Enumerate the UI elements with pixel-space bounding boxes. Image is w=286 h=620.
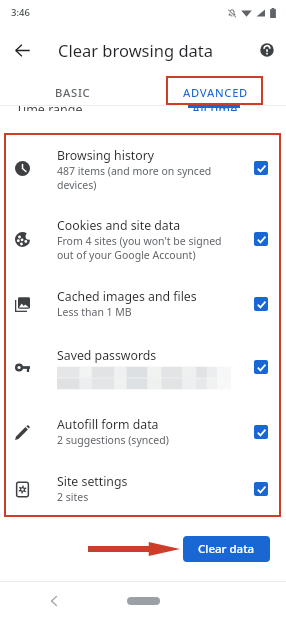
button[interactable]: Clear data (183, 536, 270, 562)
staticText: Cookies and site data (57, 217, 181, 234)
staticText: Site settings (57, 473, 128, 490)
button[interactable]: Checkbox, checked (254, 425, 268, 439)
button[interactable]: Checkbox, checked (254, 482, 268, 496)
staticText: Clear browsing data (58, 39, 214, 61)
staticText: 2 suggestions (synced) (57, 433, 169, 447)
staticText: All time (192, 106, 238, 111)
staticText: Cached images and files (57, 288, 197, 305)
button[interactable]: Back (44, 591, 64, 611)
staticText: BASIC (55, 85, 91, 100)
staticText: 2 sites (57, 490, 89, 504)
button[interactable]: Browsing history (0, 142, 286, 194)
staticText: Less than 1 MB (57, 305, 132, 319)
staticText: Clear data (198, 541, 255, 557)
button[interactable]: Checkbox, checked (254, 232, 268, 246)
button[interactable]: Saved passwords (0, 341, 286, 393)
staticText: 3:46 (11, 6, 30, 19)
button[interactable]: Help (254, 37, 280, 63)
button[interactable]: Back (8, 36, 36, 64)
button[interactable]: Cookies and site data (0, 213, 286, 265)
button[interactable]: Checkbox, checked (254, 297, 268, 311)
button[interactable]: Cached images and files (0, 278, 286, 330)
staticText: ADVANCED (183, 85, 248, 100)
button[interactable]: BASIC (38, 81, 108, 103)
button[interactable]: Site settings (0, 463, 286, 515)
staticText: Saved passwords (57, 347, 157, 364)
staticText: Browsing history (57, 147, 154, 164)
button[interactable]: Checkbox, checked (254, 360, 268, 374)
button[interactable]: Autofill form data (0, 406, 286, 458)
staticText: out of your Google Account) (57, 248, 196, 262)
staticText: Time range (16, 106, 83, 111)
staticText: Autofill form data (57, 416, 159, 433)
button[interactable]: Checkbox, checked (254, 161, 268, 175)
button[interactable]: ADVANCED (178, 81, 253, 103)
button[interactable]: Home (127, 597, 160, 605)
staticText: devices) (57, 178, 97, 192)
staticText: From 4 sites (you won't be signed (57, 234, 222, 248)
staticText: 487 items (and more on synced (57, 164, 212, 178)
